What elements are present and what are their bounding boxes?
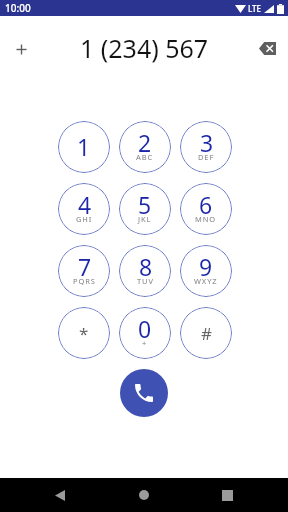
button[interactable]: * bbox=[58, 307, 110, 359]
staticText: ABC bbox=[136, 152, 154, 162]
button[interactable]: 2 bbox=[119, 121, 171, 173]
button[interactable]: 9 bbox=[180, 245, 232, 297]
button[interactable]: # bbox=[180, 307, 232, 359]
staticText: WXYZ bbox=[194, 276, 218, 286]
staticText: DEF bbox=[198, 152, 215, 162]
staticText: 3 bbox=[200, 127, 214, 158]
button[interactable]: Back bbox=[36, 478, 84, 512]
button[interactable]: Add bbox=[5, 33, 37, 65]
staticText: PQRS bbox=[73, 276, 96, 286]
button[interactable]: 1 bbox=[58, 121, 110, 173]
staticText: TUV bbox=[137, 276, 154, 286]
button[interactable]: 5 bbox=[119, 183, 171, 235]
staticText: 0 bbox=[138, 313, 152, 344]
button[interactable]: Call bbox=[120, 369, 168, 417]
staticText: JKL bbox=[138, 214, 152, 224]
button[interactable]: 0 bbox=[119, 307, 171, 359]
staticText: + bbox=[142, 338, 148, 348]
staticText: * bbox=[79, 322, 89, 345]
staticText: 7 bbox=[78, 251, 92, 282]
staticText: 8 bbox=[139, 251, 153, 282]
staticText: 10:00 bbox=[5, 1, 31, 15]
button[interactable]: 3 bbox=[180, 121, 232, 173]
staticText: LTE bbox=[248, 3, 262, 14]
staticText: # bbox=[201, 322, 212, 345]
button[interactable]: 4 bbox=[58, 183, 110, 235]
button[interactable]: Backspace bbox=[251, 32, 283, 64]
staticText: 6 bbox=[199, 189, 213, 220]
staticText: 4 bbox=[78, 189, 92, 220]
button[interactable]: Home bbox=[120, 478, 168, 512]
button[interactable]: Recents bbox=[203, 478, 251, 512]
staticText: 9 bbox=[199, 251, 213, 282]
staticText: 5 bbox=[138, 189, 152, 220]
button[interactable]: 8 bbox=[119, 245, 171, 297]
staticText: MNO bbox=[195, 214, 217, 224]
button[interactable]: 6 bbox=[180, 183, 232, 235]
staticText: 1 (234) 567 bbox=[80, 31, 209, 65]
staticText: GHI bbox=[76, 214, 93, 224]
staticText: 2 bbox=[138, 127, 152, 158]
button[interactable]: 7 bbox=[58, 245, 110, 297]
staticText: 1 bbox=[77, 131, 91, 162]
